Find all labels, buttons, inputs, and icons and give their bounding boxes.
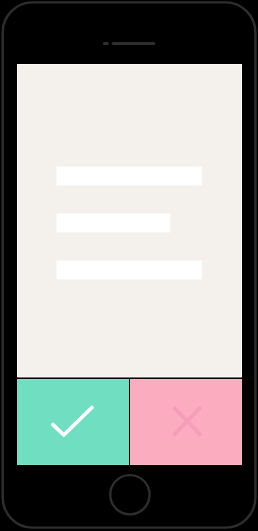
button[interactable]: Home [109,474,151,516]
button[interactable]: Accept [17,379,129,465]
